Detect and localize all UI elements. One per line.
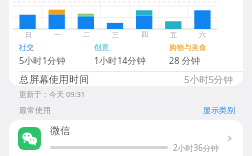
staticText: 更新于：今天 09:31: [19, 89, 86, 99]
button[interactable]: 创意: [94, 43, 169, 66]
staticText: 最常使用: [19, 105, 51, 115]
staticText: 微信: [50, 124, 70, 137]
staticText: 四: [141, 30, 148, 39]
staticText: 总屏幕使用时间: [19, 73, 89, 86]
staticText: 1小时14分钟: [94, 54, 146, 66]
staticText: 28 分钟: [169, 54, 200, 66]
staticText: 二: [83, 30, 90, 39]
staticText: 显示类别: [203, 105, 235, 115]
staticText: 六: [199, 30, 206, 39]
staticText: 三: [112, 30, 119, 39]
button[interactable]: 总屏幕使用时间: [9, 72, 243, 86]
staticText: 一: [54, 30, 61, 39]
button[interactable]: 社交: [19, 43, 94, 66]
button[interactable]: 购物与美食: [169, 43, 233, 66]
staticText: 2小时36分钟: [173, 142, 219, 153]
staticText: 5小时5分钟: [184, 73, 233, 86]
staticText: 五: [170, 30, 177, 39]
staticText: 5小时1分钟: [19, 54, 66, 66]
staticText: 日: [25, 30, 32, 39]
button[interactable]: 微信: [9, 120, 243, 156]
staticText: 社交: [19, 43, 34, 52]
staticText: 购物与美食: [169, 43, 207, 52]
button[interactable]: 显示类别: [203, 105, 235, 115]
staticText: 创意: [94, 43, 109, 52]
